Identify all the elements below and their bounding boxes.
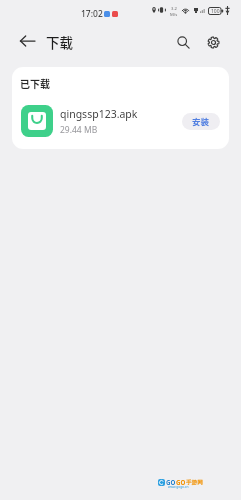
staticText: 3.2 (171, 6, 177, 12)
staticText: 已下载 (20, 76, 50, 90)
staticText: GO (176, 478, 186, 486)
staticText: GO (166, 478, 176, 486)
staticText: 下载 (46, 32, 73, 52)
button[interactable]: Settings (199, 28, 227, 56)
button[interactable]: 安装 (182, 113, 220, 130)
staticText: 手游网 (186, 479, 203, 486)
button[interactable]: Back (13, 27, 41, 55)
staticText: www.gogo.cn (168, 485, 189, 489)
button[interactable]: qingssp123.apk (12, 99, 229, 143)
staticText: 100 (211, 8, 220, 15)
staticText: 17:02 (81, 8, 103, 20)
staticText: 29.44 MB (60, 124, 98, 136)
staticText: qingssp123.apk (60, 107, 138, 121)
staticText: 安装 (192, 115, 210, 127)
button[interactable]: Search (169, 28, 197, 56)
staticText: M/s (170, 12, 178, 18)
